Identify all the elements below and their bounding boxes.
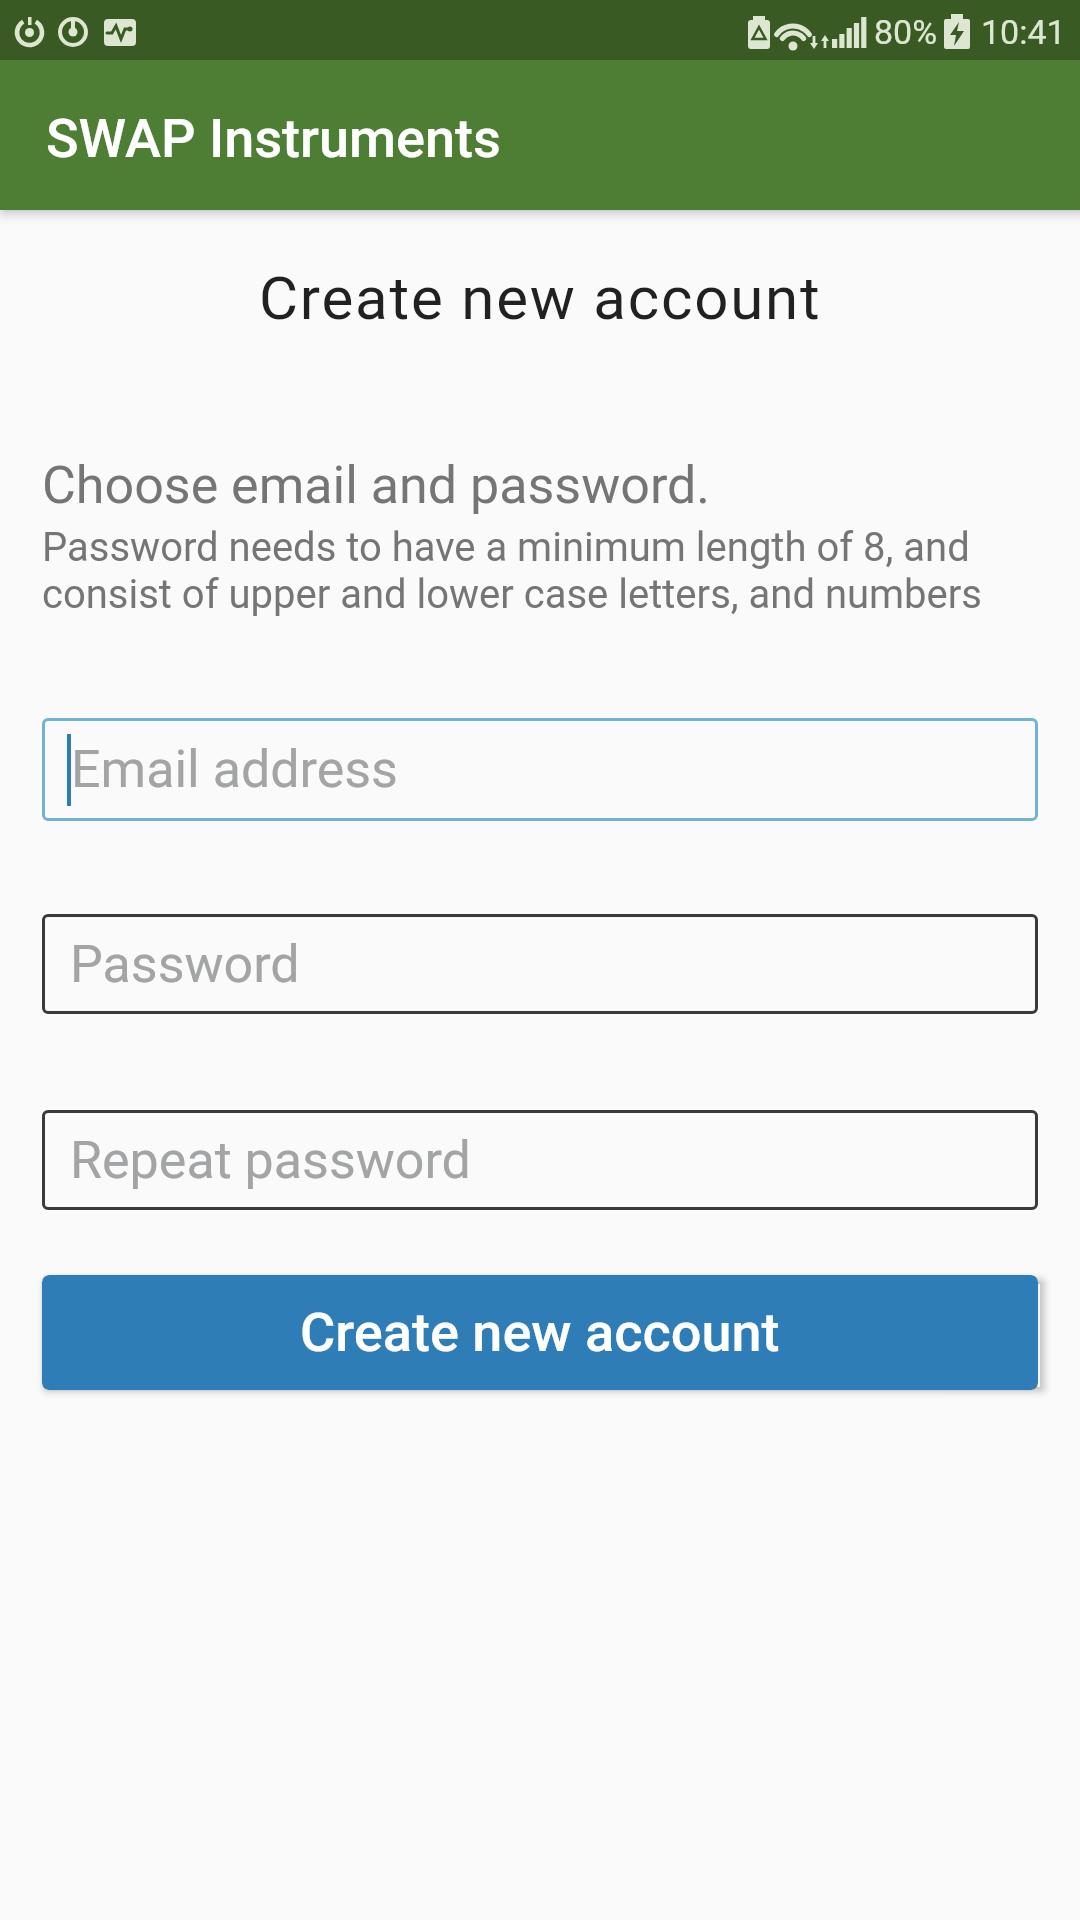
button[interactable]: Repeat password [42, 1110, 1038, 1210]
staticText: Repeat password [70, 1130, 471, 1191]
button[interactable]: Password [42, 914, 1038, 1014]
staticText: Create new account [300, 1301, 780, 1364]
staticText: 80% [874, 12, 938, 52]
button[interactable]: Create new account [42, 1275, 1038, 1390]
staticText: 10:41 [981, 12, 1066, 52]
button[interactable]: Email address [42, 718, 1038, 821]
staticText: Create new account [259, 263, 822, 333]
staticText: SWAP Instruments [46, 107, 501, 170]
staticText: Password [70, 934, 300, 995]
staticText: Choose email and password. [42, 455, 711, 516]
staticText: Email address [71, 739, 398, 800]
staticText: Password needs to have a minimum length … [42, 524, 982, 618]
